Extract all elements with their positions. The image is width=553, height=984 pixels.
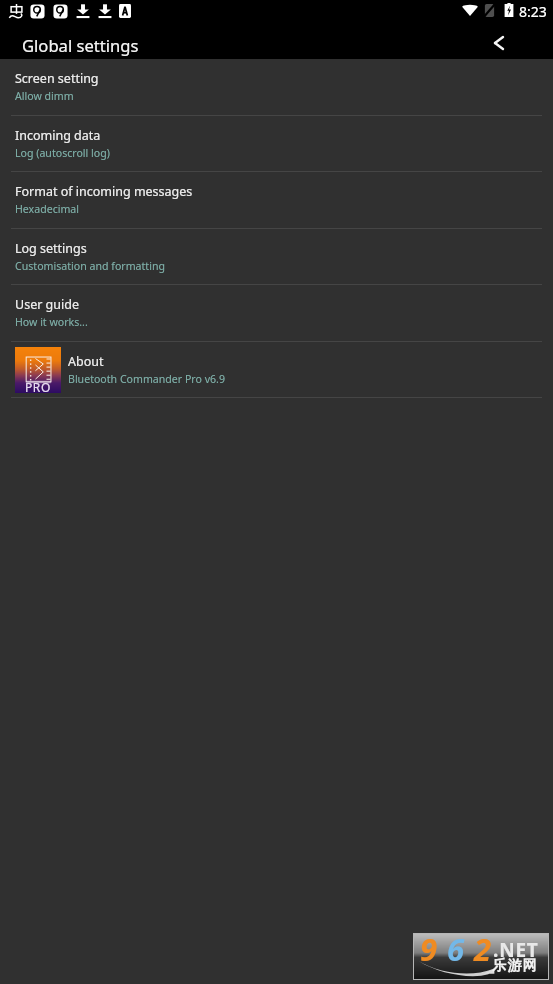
button[interactable]: Screen setting [0,59,553,116]
button[interactable]: Log settings [0,229,553,285]
staticText: Log settings [15,240,87,257]
staticText: .NET [493,937,539,963]
staticText: Allow dimm [15,89,74,103]
staticText: About [68,353,104,370]
button[interactable]: PRO [0,342,553,398]
button[interactable]: Incoming data [0,116,553,172]
staticText: 2 [474,928,492,970]
staticText: Global settings [22,34,139,57]
button[interactable]: Back [484,28,514,58]
staticText: 乐游网 [492,957,539,975]
staticText: Bluetooth Commander Pro v6.9 [68,372,226,386]
staticText: 6 [447,928,465,970]
staticText: Incoming data [15,127,101,144]
staticText: 8:23 [519,2,547,21]
button[interactable]: User guide [0,285,553,342]
staticText: How it works... [15,315,88,329]
staticText: Screen setting [15,70,99,87]
staticText: 9 [420,928,438,970]
staticText: Customisation and formatting [15,259,165,273]
staticText: User guide [15,296,79,313]
staticText: Log (autoscroll log) [15,146,110,160]
staticText: Hexadecimal [15,202,80,216]
button[interactable]: Format of incoming messages [0,172,553,229]
staticText: PRO [25,379,51,395]
staticText: Format of incoming messages [15,183,193,200]
